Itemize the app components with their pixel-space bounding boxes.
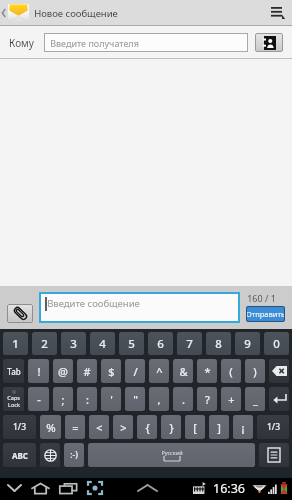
staticText: $ xyxy=(108,364,115,379)
staticText: { xyxy=(145,420,150,435)
button[interactable]: - xyxy=(28,387,49,411)
other: Enter xyxy=(273,394,286,404)
button[interactable]: { xyxy=(137,415,157,439)
button[interactable]: Backspace xyxy=(269,359,289,383)
staticText: Кому xyxy=(9,36,34,50)
staticText: 2 xyxy=(41,336,48,352)
button[interactable]: Русский xyxy=(88,443,255,467)
other: Change language xyxy=(44,449,57,462)
button[interactable]: Change language xyxy=(40,443,60,467)
staticText: 16:36 xyxy=(213,480,245,497)
staticText: * xyxy=(204,364,211,379)
button[interactable]: 2 xyxy=(32,332,57,355)
button[interactable]: $ xyxy=(101,359,121,383)
button[interactable]: 8 xyxy=(206,332,231,355)
button[interactable]: Введите сообщение xyxy=(39,292,240,323)
button[interactable]: Home xyxy=(28,476,52,500)
staticText: ¡ xyxy=(241,420,245,435)
button[interactable]: ^ xyxy=(149,359,169,383)
button[interactable]: , xyxy=(149,387,169,411)
button[interactable]: : xyxy=(77,387,97,411)
button[interactable]: @ xyxy=(53,359,73,383)
button[interactable]: 4 xyxy=(90,332,115,355)
button[interactable]: ABC xyxy=(3,443,36,467)
button[interactable]: } xyxy=(161,415,181,439)
button[interactable]: Введите получателя xyxy=(44,33,248,52)
staticText: 160 / 1 xyxy=(247,292,276,304)
button[interactable]: # xyxy=(77,359,97,383)
staticText: ) xyxy=(253,364,257,379)
button[interactable]: 5 xyxy=(119,332,144,355)
other: Keyboard settings xyxy=(268,448,280,462)
button[interactable]: Attach xyxy=(7,304,33,323)
other: Backspace xyxy=(272,366,287,376)
staticText: [ xyxy=(193,420,197,435)
button[interactable]: 1 xyxy=(3,332,28,355)
button[interactable]: Expand notifications xyxy=(135,476,159,500)
button[interactable]: ( xyxy=(221,359,241,383)
staticText: " xyxy=(133,392,138,407)
staticText: 4 xyxy=(99,336,106,352)
button[interactable]: Enter xyxy=(269,387,289,411)
button[interactable]: = xyxy=(65,415,85,439)
staticText: , xyxy=(157,392,161,407)
staticText: 1 xyxy=(12,336,19,352)
button[interactable]: / xyxy=(125,359,145,383)
staticText: 5 xyxy=(128,336,135,352)
button[interactable]: More options xyxy=(267,0,289,26)
button[interactable]: > xyxy=(113,415,133,439)
button[interactable]: Keyboard settings xyxy=(259,443,289,467)
button[interactable]: Back xyxy=(0,3,118,23)
button[interactable]: 3 xyxy=(61,332,86,355)
button[interactable]: 0 xyxy=(264,332,289,355)
staticText: = xyxy=(72,420,79,435)
button[interactable]: Screenshot xyxy=(83,476,107,500)
button[interactable]: [ xyxy=(185,415,205,439)
button[interactable]: . xyxy=(173,387,193,411)
staticText: _ xyxy=(253,392,258,407)
button[interactable]: Caps xyxy=(3,387,24,411)
staticText: # xyxy=(83,364,91,379)
button[interactable]: 7 xyxy=(177,332,202,355)
staticText: Tab xyxy=(7,366,21,377)
button[interactable]: :-) xyxy=(64,443,84,467)
button[interactable]: 1/3 xyxy=(3,415,36,439)
button[interactable]: Back xyxy=(2,476,27,500)
button[interactable]: & xyxy=(173,359,193,383)
staticText: + xyxy=(228,392,235,407)
button[interactable]: Choose contact xyxy=(255,33,283,52)
button[interactable]: ! xyxy=(28,359,49,383)
button[interactable]: Tab xyxy=(3,359,24,383)
button[interactable]: _ xyxy=(245,387,265,411)
button[interactable]: * xyxy=(197,359,217,383)
staticText: ] xyxy=(217,420,221,435)
button[interactable]: % xyxy=(40,415,61,439)
staticText: - xyxy=(37,392,41,407)
button[interactable]: 1/3 xyxy=(257,415,289,439)
button[interactable]: ) xyxy=(245,359,265,383)
staticText: Отправить xyxy=(246,309,285,319)
button[interactable]: ? xyxy=(197,387,217,411)
staticText: 6 xyxy=(157,336,164,352)
staticText: ! xyxy=(37,364,41,379)
button[interactable]: < xyxy=(89,415,109,439)
staticText: 8 xyxy=(215,336,222,352)
button[interactable]: 6 xyxy=(148,332,173,355)
staticText: 1/3 xyxy=(13,421,26,433)
button[interactable]: 9 xyxy=(235,332,260,355)
button[interactable]: ; xyxy=(53,387,73,411)
staticText: < xyxy=(96,420,103,435)
staticText: . xyxy=(182,392,185,407)
button[interactable]: ] xyxy=(209,415,229,439)
button[interactable]: " xyxy=(125,387,145,411)
staticText: @ xyxy=(58,364,68,379)
button[interactable]: ¡ xyxy=(233,415,253,439)
staticText: :-) xyxy=(70,449,78,461)
staticText: > xyxy=(120,420,127,435)
staticText: : xyxy=(86,392,89,407)
button[interactable]: + xyxy=(221,387,241,411)
staticText: Введите получателя xyxy=(50,37,139,49)
button[interactable]: ' xyxy=(101,387,121,411)
button[interactable]: Отправить xyxy=(246,306,285,322)
button[interactable]: Recent apps xyxy=(56,476,80,500)
